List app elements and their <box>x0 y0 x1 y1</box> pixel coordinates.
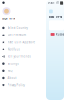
staticText: Settings <box>8 62 19 65</box>
button[interactable]: Get Premium <box>0 31 36 39</box>
staticText: 9:41 <box>48 1 55 4</box>
button[interactable]: Tell your friends <box>0 53 36 60</box>
staticText: FAQ <box>8 69 13 72</box>
button[interactable]: About <box>0 74 36 82</box>
staticText: Select Country <box>8 26 28 30</box>
staticText: Privacy Policy <box>8 83 25 87</box>
staticText: Tell your friends <box>8 55 31 58</box>
button[interactable]: Privacy Policy <box>0 81 36 89</box>
staticText: BEST VPN <box>49 15 62 19</box>
staticText: BEST VPN <box>2 17 15 20</box>
staticText: ıll ⬛ <box>56 1 63 4</box>
button[interactable]: Rate us in AppStore <box>0 39 36 46</box>
staticText: Get Premium <box>8 33 26 37</box>
button[interactable]: Menu <box>49 9 53 13</box>
button[interactable]: Settings <box>0 60 36 67</box>
staticText: Rate us in AppStore <box>8 40 36 44</box>
button[interactable]: Select Country <box>0 24 36 31</box>
button[interactable]: Notify us <box>0 46 36 53</box>
button[interactable]: FAQ <box>0 67 36 74</box>
button[interactable]: Close menu <box>0 0 10 6</box>
staticText: Notify us <box>8 48 20 51</box>
staticText: About <box>8 76 17 80</box>
staticText: Russia <box>56 33 64 36</box>
